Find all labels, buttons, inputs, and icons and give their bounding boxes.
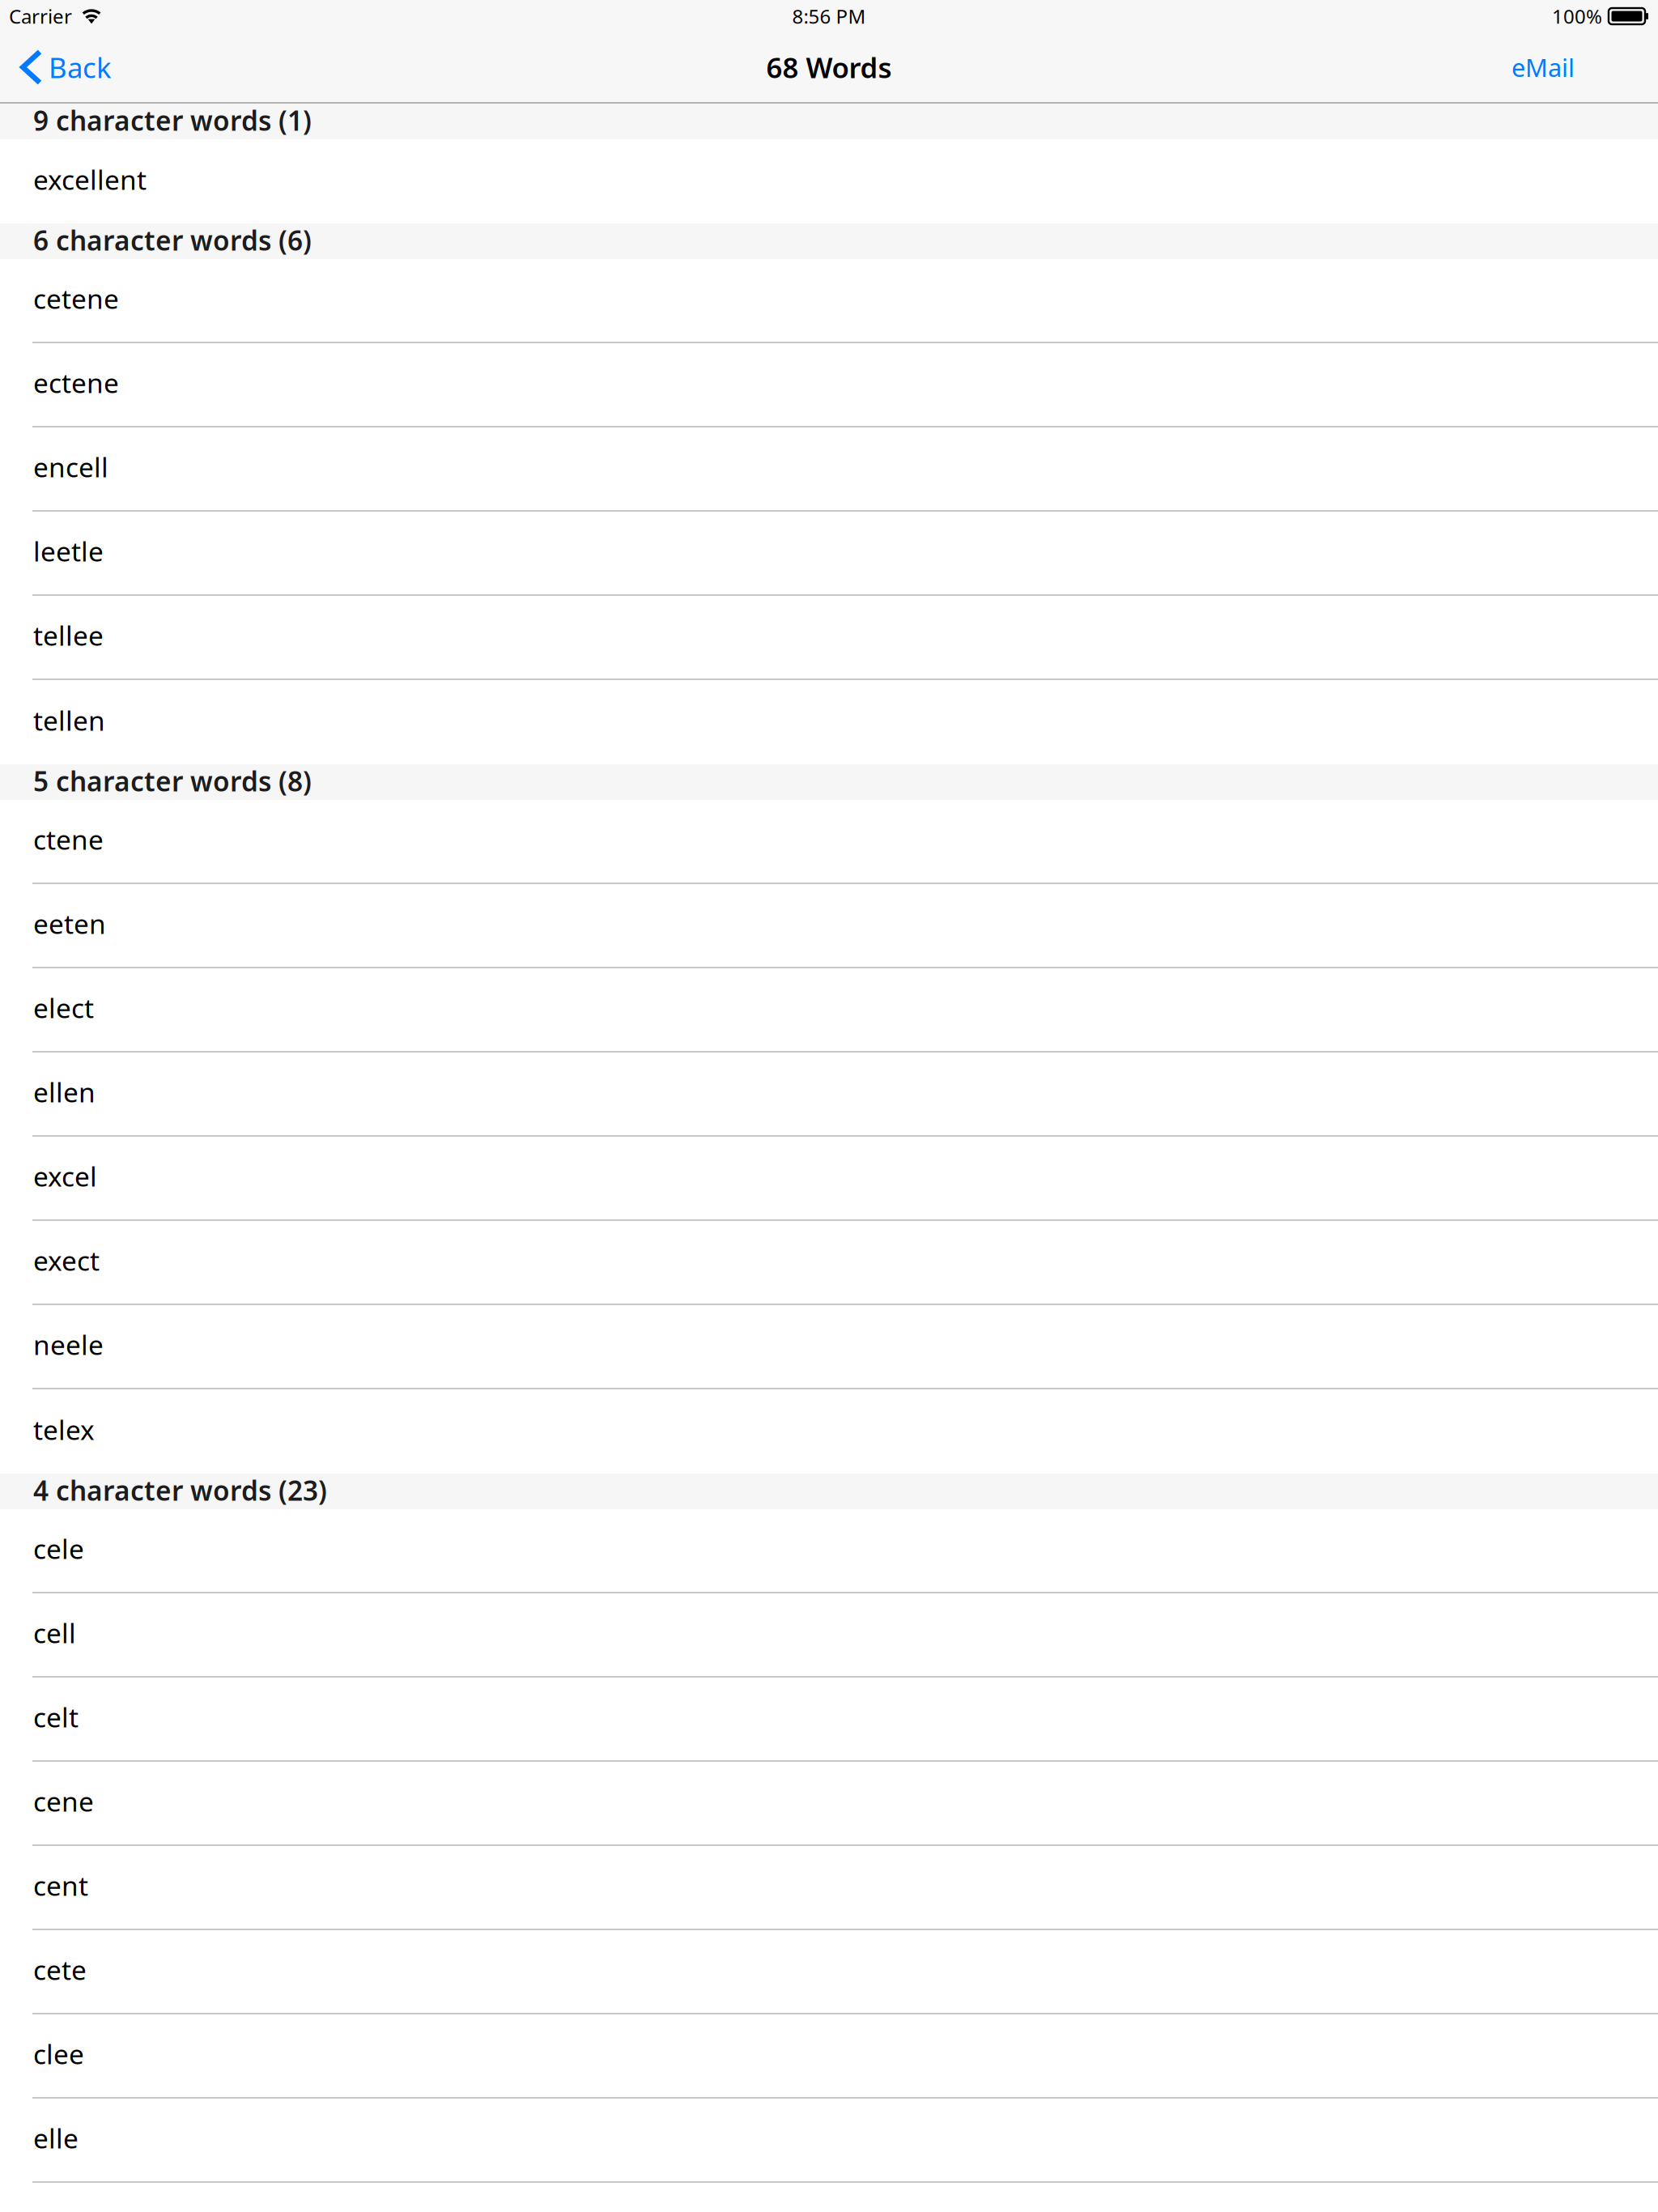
staticText: cetene <box>33 280 119 316</box>
button[interactable]: cent <box>0 1846 1658 1930</box>
button[interactable]: cene <box>0 1762 1658 1846</box>
staticText: telex <box>33 1412 95 1447</box>
button[interactable]: eMail <box>1497 32 1589 102</box>
staticText: tellee <box>33 617 104 653</box>
button[interactable]: leetle <box>0 512 1658 596</box>
staticText: cent <box>33 1867 88 1903</box>
staticText: ellen <box>33 1074 96 1110</box>
button[interactable]: tellee <box>0 596 1658 680</box>
button[interactable]: celt <box>0 1678 1658 1762</box>
staticText: cell <box>33 1615 76 1651</box>
staticText: clee <box>33 2036 84 2072</box>
staticText: celt <box>33 1699 79 1735</box>
staticText: cene <box>33 1783 94 1819</box>
staticText: eMail <box>1511 51 1575 84</box>
button[interactable]: excel <box>0 1137 1658 1221</box>
button[interactable]: eeten <box>0 884 1658 968</box>
button[interactable]: ctene <box>0 800 1658 884</box>
staticText: neele <box>33 1327 104 1362</box>
button[interactable]: elle <box>0 2099 1658 2183</box>
staticText: 6 character words (6) <box>33 222 312 258</box>
staticText: 5 character words (8) <box>33 763 312 799</box>
button[interactable]: excellent <box>0 139 1658 223</box>
staticText: 68 Words <box>766 49 892 86</box>
staticText: 9 character words (1) <box>33 102 312 138</box>
staticText: tellen <box>33 702 105 738</box>
button[interactable]: neele <box>0 1305 1658 1389</box>
staticText: elect <box>33 990 94 1026</box>
staticText: 4 character words (23) <box>33 1472 327 1508</box>
staticText: exect <box>33 1242 100 1278</box>
button[interactable]: elect <box>0 968 1658 1053</box>
button[interactable]: telex <box>0 1389 1658 1474</box>
staticText: 8:56 PM <box>792 3 866 29</box>
staticText: eeten <box>33 906 106 941</box>
staticText: leetle <box>33 533 104 569</box>
button[interactable]: Back <box>0 32 126 102</box>
staticText: elle <box>33 2120 79 2156</box>
navigationBar: 68 Words <box>0 32 1658 102</box>
button[interactable]: exect <box>0 1221 1658 1305</box>
button[interactable]: ectene <box>0 343 1658 428</box>
button[interactable]: cell <box>0 1593 1658 1678</box>
staticText: ectene <box>33 365 119 401</box>
button[interactable]: tellen <box>0 680 1658 764</box>
staticText: ctene <box>33 821 104 857</box>
staticText: excel <box>33 1158 97 1194</box>
button[interactable]: ellen <box>0 1053 1658 1137</box>
staticText: excellent <box>33 161 147 197</box>
button[interactable]: cele <box>0 1509 1658 1593</box>
button[interactable]: cetene <box>0 259 1658 343</box>
button[interactable]: clee <box>0 2014 1658 2099</box>
staticText: Carrier <box>9 3 72 29</box>
staticText: cete <box>33 1952 87 1987</box>
staticText: Back <box>49 49 112 86</box>
staticText: 100% <box>1552 3 1602 29</box>
button[interactable]: encell <box>0 428 1658 512</box>
staticText: encell <box>33 449 108 485</box>
button[interactable]: cete <box>0 1930 1658 2014</box>
staticText: cele <box>33 1531 84 1566</box>
